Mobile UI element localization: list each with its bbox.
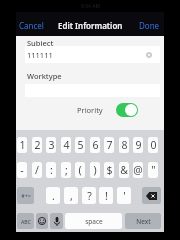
button[interactable]: (	[75, 162, 85, 178]
button[interactable]: $	[104, 162, 114, 178]
staticText: (	[78, 163, 82, 177]
button[interactable]: )	[90, 162, 100, 178]
staticText: :	[50, 163, 53, 177]
staticText: 9:54 AM	[81, 3, 100, 10]
staticText: '	[123, 189, 126, 203]
staticText: $	[106, 163, 113, 177]
button[interactable]: 111111	[25, 46, 160, 63]
button[interactable]: Priority toggle	[116, 103, 138, 117]
staticText: Next	[136, 217, 151, 226]
button[interactable]: "	[148, 162, 158, 178]
staticText: &	[120, 163, 128, 177]
staticText: .	[52, 189, 55, 203]
button[interactable]: Dictation	[50, 213, 63, 229]
button[interactable]: 6	[90, 137, 100, 153]
staticText: Worktype	[27, 71, 62, 81]
button[interactable]: 1	[17, 137, 27, 153]
staticText: 3	[48, 138, 55, 152]
button[interactable]: -	[17, 162, 27, 178]
staticText: ABC	[21, 218, 31, 225]
staticText: )	[93, 163, 97, 177]
button[interactable]: Next	[125, 213, 161, 229]
staticText: Edit Information	[58, 20, 123, 31]
button[interactable]: Done	[139, 20, 160, 31]
button[interactable]: ,	[64, 187, 78, 204]
button[interactable]: ABC	[17, 213, 34, 229]
staticText: /	[35, 163, 39, 177]
button[interactable]: 0	[148, 137, 158, 153]
button[interactable]: &	[119, 162, 129, 178]
staticText: 2	[34, 138, 41, 152]
button[interactable]: Cancel	[19, 20, 44, 31]
staticText: #+=	[21, 192, 31, 199]
button[interactable]: '	[117, 187, 131, 204]
staticText: @	[133, 163, 143, 177]
staticText: 0	[150, 138, 157, 152]
staticText: space	[85, 217, 103, 226]
staticText: 1	[19, 138, 26, 152]
staticText: -	[20, 163, 24, 177]
button[interactable]: 7	[104, 137, 114, 153]
staticText: 6	[92, 138, 99, 152]
button[interactable]: ;	[61, 162, 71, 178]
staticText: !	[105, 189, 108, 203]
staticText: "	[151, 163, 156, 177]
staticText: Priority	[77, 105, 103, 115]
button[interactable]: Backspace	[142, 187, 161, 204]
staticText: ?	[87, 189, 92, 203]
button[interactable]: 9	[133, 137, 143, 153]
button[interactable]: @	[133, 162, 143, 178]
button[interactable]: Emoji keyboard	[36, 213, 48, 229]
staticText: 7	[106, 138, 113, 152]
button[interactable]: .	[46, 187, 60, 204]
staticText: 5	[77, 138, 84, 152]
button[interactable]: 2	[32, 137, 42, 153]
button[interactable]: ?	[82, 187, 96, 204]
staticText: 4	[63, 138, 70, 152]
button[interactable]: 8	[119, 137, 129, 153]
staticText: 9	[135, 138, 142, 152]
staticText: Subject	[27, 38, 54, 48]
button[interactable]: !	[99, 187, 113, 204]
button[interactable]: #+=	[17, 187, 34, 204]
staticText: 8	[121, 138, 128, 152]
staticText: ;	[65, 163, 68, 177]
button[interactable]: space	[65, 213, 122, 229]
staticText: ,	[70, 189, 73, 203]
button[interactable]: 4	[61, 137, 71, 153]
button[interactable]: /	[32, 162, 42, 178]
button[interactable]: 3	[46, 137, 56, 153]
button[interactable]: 5	[75, 137, 85, 153]
button[interactable]: Clear text	[146, 52, 152, 58]
staticText: 111111	[27, 50, 53, 60]
button[interactable]: :	[46, 162, 56, 178]
